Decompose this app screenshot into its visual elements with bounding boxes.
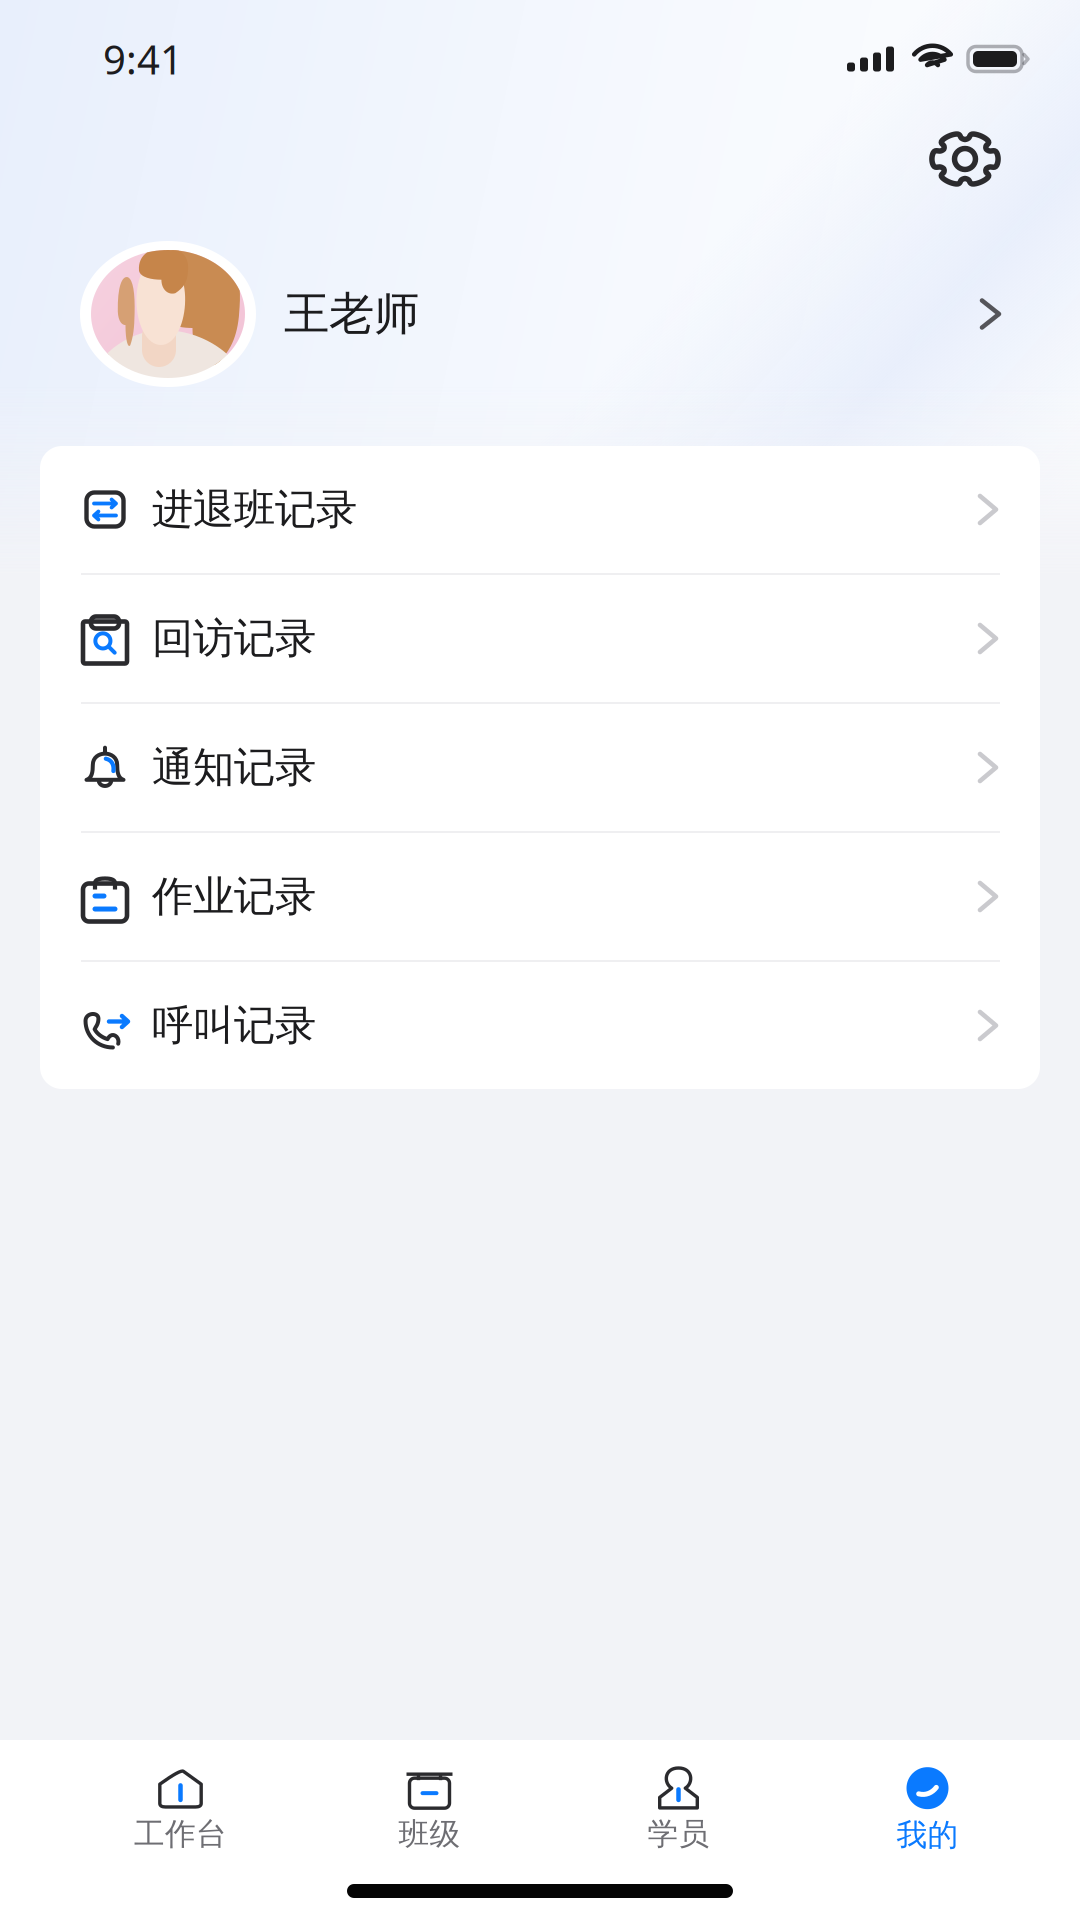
staticText: 工作台: [134, 1815, 227, 1853]
button[interactable]: 我的: [803, 1733, 1052, 1869]
button[interactable]: 通知记录: [40, 704, 1040, 831]
button[interactable]: 王老师: [0, 198, 1080, 387]
button[interactable]: 工作台: [56, 1734, 305, 1868]
staticText: 进退班记录: [152, 484, 357, 535]
button[interactable]: 学员: [554, 1734, 803, 1868]
staticText: 学员: [647, 1815, 709, 1853]
button[interactable]: 进退班记录: [40, 446, 1040, 573]
button[interactable]: 呼叫记录: [40, 962, 1040, 1089]
staticText: 回访记录: [152, 613, 316, 664]
staticText: 作业记录: [152, 871, 316, 922]
staticText: 班级: [398, 1815, 460, 1853]
staticText: 通知记录: [152, 742, 316, 793]
button[interactable]: 回访记录: [40, 575, 1040, 702]
staticText: 我的: [896, 1816, 958, 1854]
button[interactable]: 班级: [305, 1734, 554, 1868]
button[interactable]: Settings: [919, 120, 1011, 198]
button[interactable]: 作业记录: [40, 833, 1040, 960]
staticText: 王老师: [284, 286, 419, 342]
staticText: 呼叫记录: [152, 1000, 316, 1051]
staticText: 9:41: [103, 32, 183, 85]
